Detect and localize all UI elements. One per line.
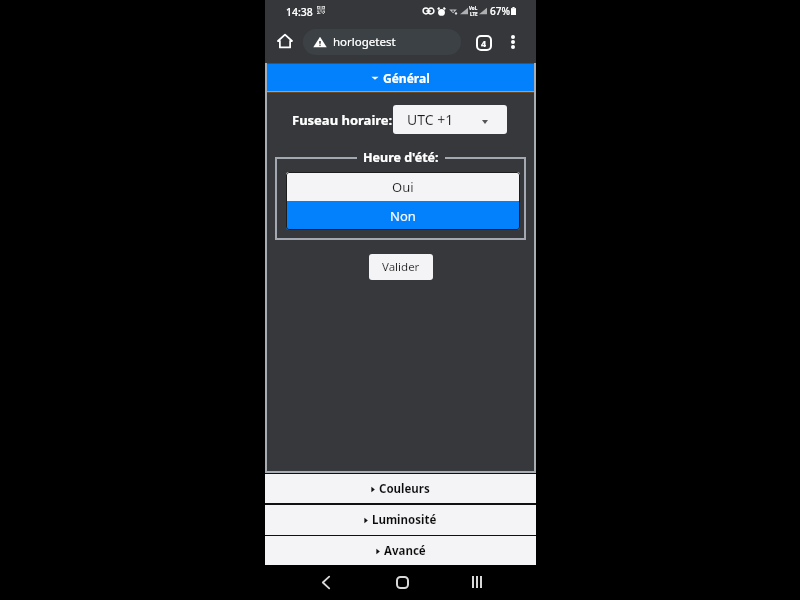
- staticText: Valider: [382, 259, 420, 275]
- button[interactable]: horlogetest: [303, 29, 461, 55]
- staticText: Heure d'été:: [363, 149, 439, 166]
- button[interactable]: Couleurs: [265, 474, 536, 503]
- button[interactable]: Oui: [286, 172, 520, 201]
- staticText: Luminosité: [372, 512, 437, 528]
- staticText: Fuseau horaire:: [292, 111, 393, 129]
- staticText: Oui: [392, 178, 414, 196]
- staticText: VoL: [469, 5, 478, 11]
- button[interactable]: Non: [286, 201, 520, 230]
- button[interactable]: Valider: [369, 254, 433, 280]
- staticText: 14:38: [286, 5, 313, 19]
- staticText: Général: [383, 70, 430, 86]
- staticText: 4: [481, 37, 487, 49]
- button[interactable]: More options: [502, 31, 523, 52]
- button[interactable]: Recent apps: [464, 569, 490, 595]
- button[interactable]: Home: [272, 28, 298, 54]
- staticText: Non: [390, 207, 416, 225]
- staticText: Avancé: [384, 543, 426, 559]
- button[interactable]: Général: [267, 64, 534, 91]
- button[interactable]: Luminosité: [265, 505, 536, 535]
- button[interactable]: UTC +1: [393, 105, 507, 134]
- staticText: horlogetest: [333, 34, 396, 50]
- staticText: UTC +1: [407, 110, 454, 129]
- staticText: LTE: [470, 11, 478, 17]
- button[interactable]: Avancé: [265, 536, 536, 565]
- button[interactable]: Tabs: [473, 32, 494, 53]
- button[interactable]: Back: [313, 569, 339, 595]
- button[interactable]: Home: [389, 569, 415, 595]
- staticText: Couleurs: [379, 481, 430, 497]
- staticText: 67%: [490, 4, 510, 18]
